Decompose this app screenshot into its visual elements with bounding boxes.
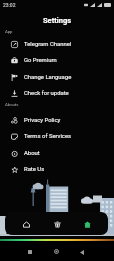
staticText: Telegram Channel — [24, 41, 72, 48]
staticText: App — [5, 29, 13, 34]
staticText: Go Premium — [24, 57, 57, 64]
button[interactable]: Rate Us — [0, 162, 114, 177]
button[interactable]: About — [0, 146, 114, 161]
staticText: About — [24, 150, 40, 157]
button[interactable]: Check for update — [0, 86, 114, 101]
button[interactable]: Eco — [77, 214, 97, 234]
staticText: Check for update — [24, 90, 69, 97]
staticText: Settings — [43, 16, 72, 25]
staticText: Abouts — [5, 102, 19, 107]
staticText: 23:02 — [3, 2, 16, 8]
button[interactable]: Telegram Channel — [0, 37, 114, 52]
staticText: Terms of Services — [24, 133, 72, 140]
staticText: Privacy Policy — [24, 117, 61, 124]
button[interactable]: Privacy Policy — [0, 113, 114, 128]
button[interactable]: Home — [16, 214, 36, 234]
button[interactable]: Go Premium — [0, 53, 114, 68]
button[interactable]: Change Language — [0, 70, 114, 85]
button[interactable]: Delete — [47, 214, 67, 234]
staticText: Rate Us — [24, 166, 45, 173]
staticText: Change Language — [24, 74, 72, 81]
button[interactable]: Terms of Services — [0, 129, 114, 144]
